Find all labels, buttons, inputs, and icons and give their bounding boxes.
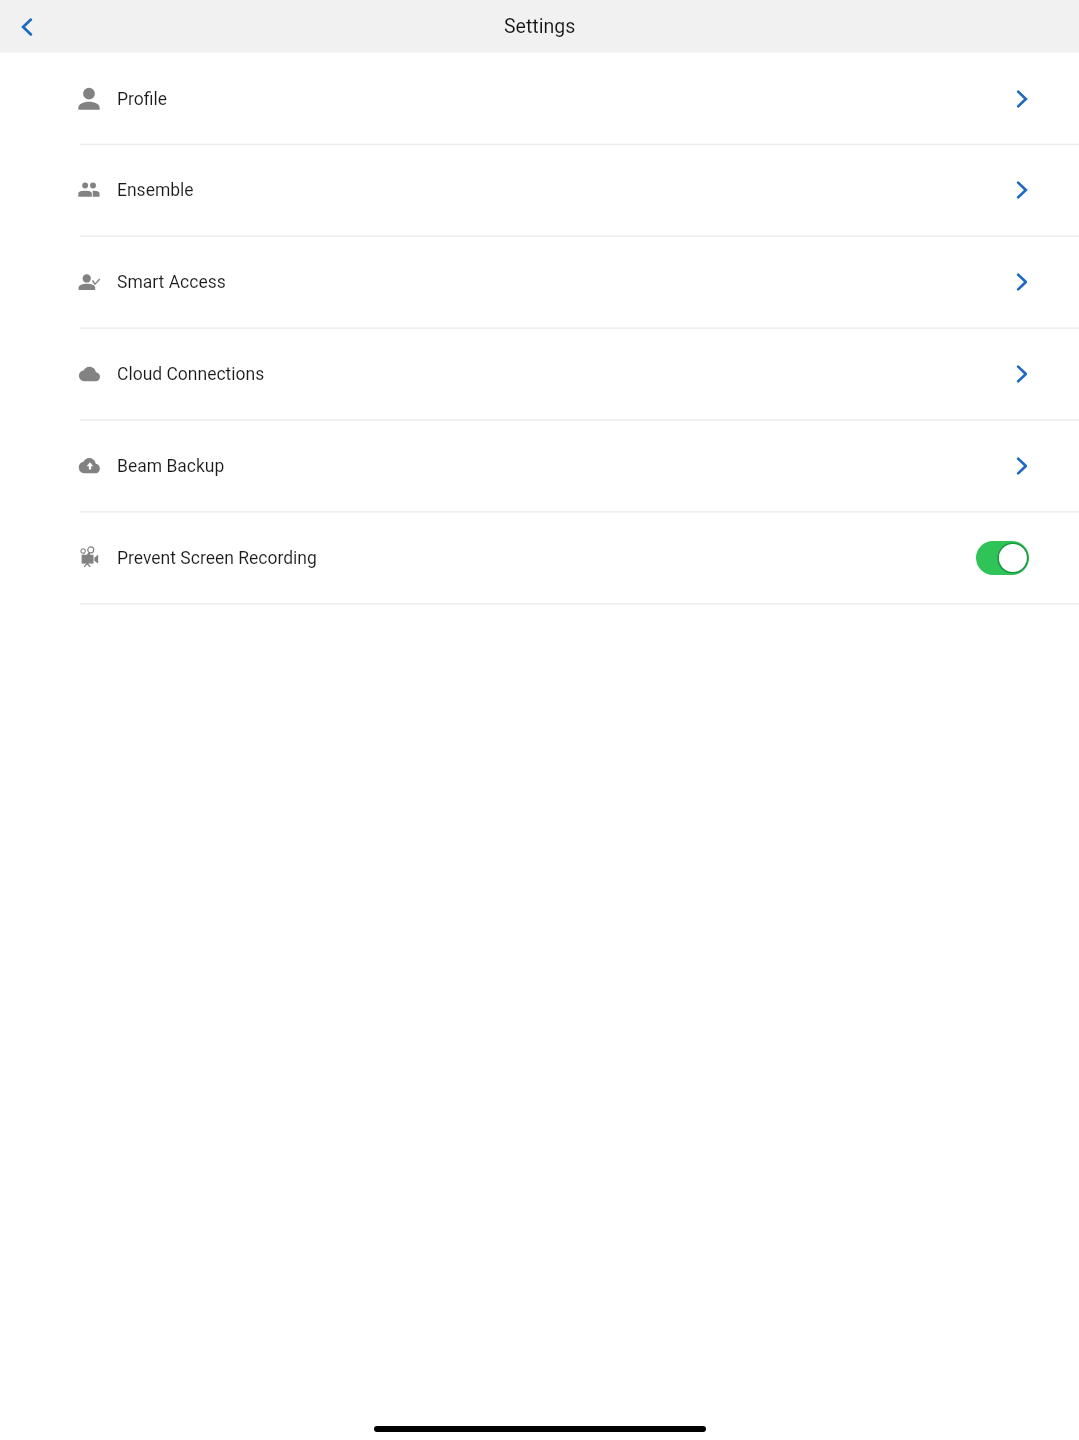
staticText: Settings xyxy=(504,15,576,38)
staticText: Cloud Connections xyxy=(117,364,265,385)
staticText: Prevent Screen Recording xyxy=(117,548,317,569)
button[interactable]: Cloud Connections xyxy=(0,328,1079,420)
button[interactable]: Smart Access xyxy=(0,236,1079,328)
other: Open Cloud Connections xyxy=(1009,361,1035,387)
staticText: Smart Access xyxy=(117,272,226,293)
staticText: Ensemble xyxy=(117,180,194,201)
button[interactable]: Beam Backup xyxy=(0,420,1079,512)
staticText: Profile xyxy=(117,89,168,110)
other: Open Beam Backup xyxy=(1009,453,1035,479)
button[interactable]: Prevent Screen Recording xyxy=(0,512,1079,604)
other: Open Profile xyxy=(1009,86,1035,112)
other: Open Smart Access xyxy=(1009,269,1035,295)
other: Open Ensemble xyxy=(1009,177,1035,203)
button[interactable]: Prevent Screen Recording toggle, on xyxy=(976,541,1029,575)
button[interactable]: Back xyxy=(4,4,49,49)
staticText: Beam Backup xyxy=(117,456,225,477)
button[interactable]: Profile xyxy=(0,53,1079,145)
button[interactable]: Ensemble xyxy=(0,144,1079,236)
